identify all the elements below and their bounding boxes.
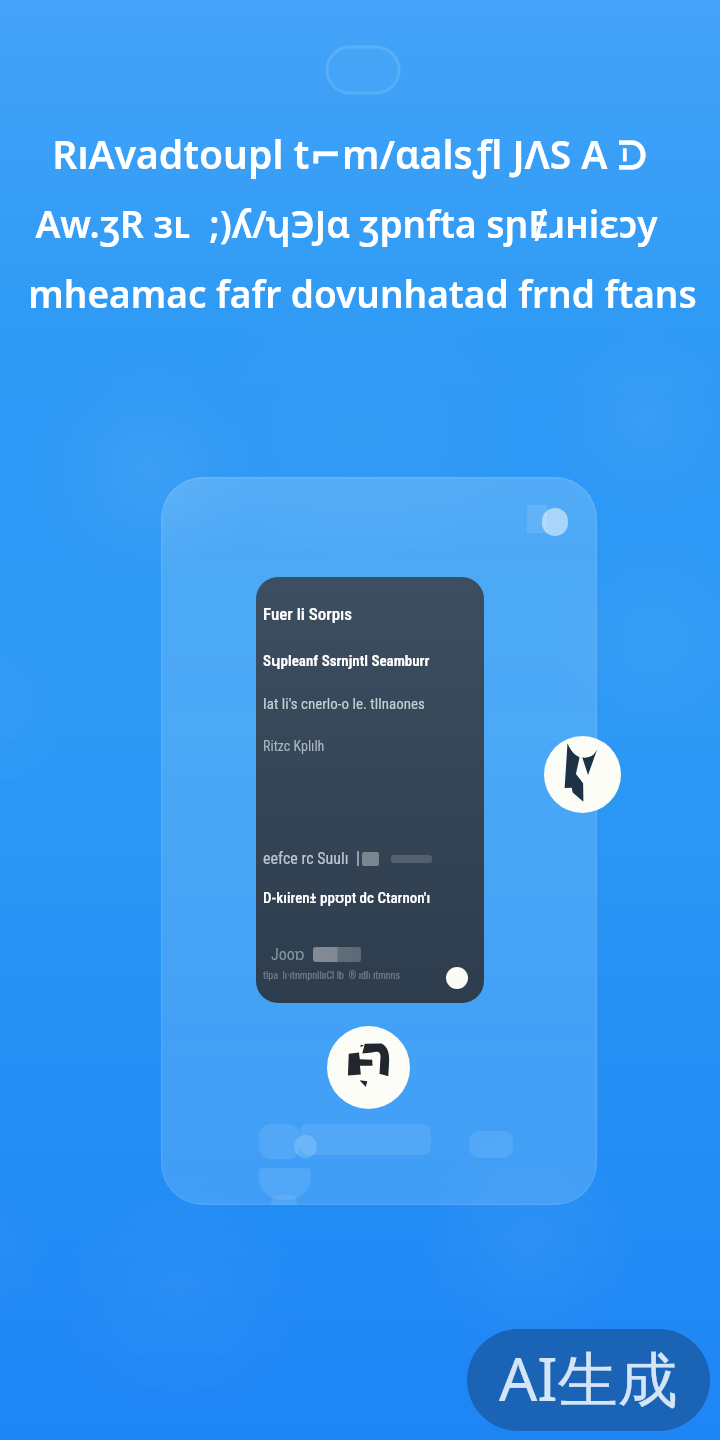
button[interactable]: App logo bbox=[544, 736, 621, 813]
staticText: eefce rc Suulı bbox=[263, 849, 349, 868]
staticText: Jooɒ bbox=[271, 943, 305, 965]
staticText: D‐kıiren± ppʊpt dc Ctarnon'ı bbox=[263, 887, 431, 907]
staticText: Iat li's cnerlo-o le. tllnaones bbox=[263, 695, 425, 713]
staticText: RıAvadtoupl t⌐m/ɑalsƒl JɅS A ᑓ bbox=[52, 127, 647, 180]
staticText: tlpa lı·ıtnmpnllııCl lb ® ıdlı ıtmnns bbox=[263, 970, 400, 982]
button[interactable]: AI生成 bbox=[467, 1329, 710, 1431]
staticText: Aw.ʒR ɜʟ ;)ʎ/ʮЭJɑ ʒpnfta sɲɆɹʜiɛɔy bbox=[35, 198, 658, 248]
staticText: Ritzc Kplılh bbox=[263, 738, 325, 754]
button[interactable]: Download bbox=[327, 1026, 410, 1109]
staticText: AI生成 bbox=[499, 1337, 678, 1419]
staticText: Sɥpleanf Ssrnjntl Seamburr bbox=[263, 650, 430, 670]
staticText: Fuer li Sorpıs bbox=[263, 604, 353, 624]
button[interactable]: Fuer li Sorpıs bbox=[256, 577, 484, 1003]
staticText: mheamac fafr dovunhatad frnd ftans bbox=[28, 268, 697, 318]
